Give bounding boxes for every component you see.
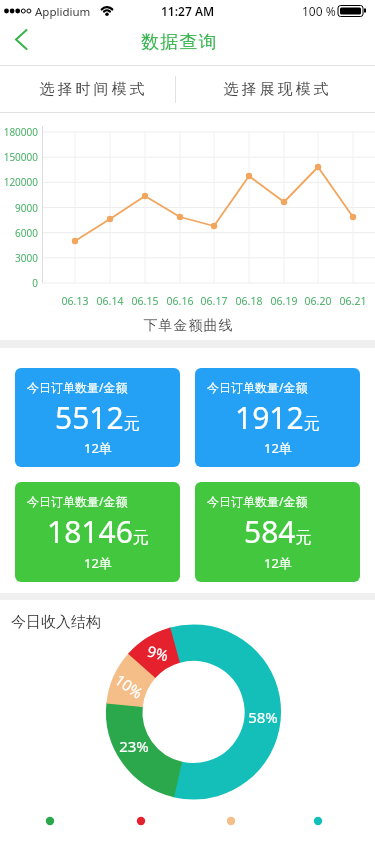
staticText: 100 % <box>302 3 336 19</box>
staticText: 今日订单数量/金额 <box>27 493 128 509</box>
staticText: 120000 <box>0 175 38 189</box>
staticText: 06.15 <box>128 294 162 308</box>
staticText: 11:27 AM <box>161 3 215 19</box>
button[interactable]: 选择展现模式 <box>176 66 375 113</box>
staticText: 下单金额曲线 <box>143 317 233 335</box>
button[interactable]: 今日订单数量/金额 <box>195 368 360 467</box>
staticText: 5512元 <box>55 397 140 438</box>
staticText: 0 <box>0 276 38 290</box>
staticText: 6000 <box>0 226 38 240</box>
staticText: 06.20 <box>301 294 335 308</box>
staticText: Applidium <box>35 4 91 20</box>
staticText: 9% <box>139 639 177 667</box>
staticText: 今日订单数量/金额 <box>27 379 128 395</box>
button[interactable]: 今日订单数量/金额 <box>15 368 180 467</box>
staticText: 06.19 <box>267 294 301 308</box>
staticText: 12单 <box>84 439 112 457</box>
staticText: 数据查询 <box>141 31 218 54</box>
staticText: 今日收入结构 <box>11 613 101 632</box>
staticText: 58% <box>246 707 280 727</box>
staticText: 1912元 <box>235 397 320 438</box>
staticText: 今日订单数量/金额 <box>207 379 308 395</box>
staticText: 180000 <box>0 125 38 139</box>
staticText: 12单 <box>264 554 292 572</box>
staticText: 150000 <box>0 150 38 164</box>
staticText: 06.13 <box>58 294 92 308</box>
staticText: 选择时间模式 <box>38 80 146 99</box>
staticText: 10% <box>109 668 149 704</box>
staticText: 选择展现模式 <box>222 80 330 99</box>
button[interactable]: 今日订单数量/金额 <box>15 482 180 582</box>
staticText: 06.17 <box>197 294 231 308</box>
staticText: 9000 <box>0 201 38 215</box>
staticText: 23% <box>117 736 151 756</box>
button[interactable] <box>0 22 40 66</box>
staticText: 584元 <box>244 511 312 552</box>
staticText: 06.16 <box>163 294 197 308</box>
staticText: 今日订单数量/金额 <box>207 493 308 509</box>
button[interactable]: 今日订单数量/金额 <box>195 482 360 582</box>
staticText: 12单 <box>264 439 292 457</box>
staticText: 06.14 <box>93 294 127 308</box>
button[interactable]: 选择时间模式 <box>0 66 175 113</box>
staticText: 12单 <box>84 554 112 572</box>
staticText: 3000 <box>0 251 38 265</box>
staticText: 06.18 <box>232 294 266 308</box>
staticText: 18146元 <box>47 511 149 552</box>
staticText: 06.21 <box>336 294 370 308</box>
